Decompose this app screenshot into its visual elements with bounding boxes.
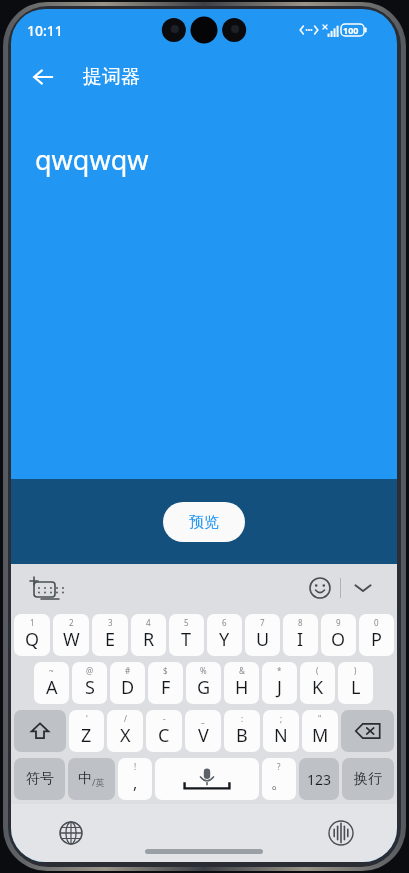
staticText: $	[163, 665, 168, 676]
staticText: C	[158, 723, 170, 748]
button[interactable]: Voice input	[321, 813, 361, 853]
staticText: 提词器	[83, 65, 140, 89]
staticText: L	[351, 675, 361, 700]
button[interactable]: @	[72, 662, 107, 704]
button[interactable]: 3	[92, 614, 128, 656]
button[interactable]: _	[185, 710, 221, 752]
button[interactable]: 预览	[163, 502, 245, 542]
button[interactable]: (	[300, 662, 335, 704]
button[interactable]: $	[148, 662, 183, 704]
button[interactable]: #	[110, 662, 145, 704]
button[interactable]: Keyboard tools	[23, 568, 63, 608]
button[interactable]: 中	[68, 758, 115, 800]
staticText: 中	[78, 770, 92, 788]
staticText: R	[143, 627, 155, 652]
staticText: 0	[374, 617, 379, 628]
button[interactable]: 6	[207, 614, 242, 656]
staticText: ~	[49, 665, 54, 676]
button[interactable]: &	[224, 662, 259, 704]
staticText: 7	[260, 617, 265, 628]
staticText: J	[277, 675, 282, 700]
button[interactable]: Space	[155, 758, 259, 800]
button[interactable]: %	[186, 662, 221, 704]
staticText: 。	[271, 773, 287, 793]
button[interactable]: 符号	[14, 758, 65, 800]
button[interactable]: Change language	[51, 813, 91, 853]
staticText: qwqwqw	[35, 141, 149, 178]
button[interactable]: /	[107, 710, 143, 752]
button[interactable]: 1	[14, 614, 50, 656]
button[interactable]: 换行	[342, 758, 394, 800]
staticText: 2	[69, 617, 74, 628]
staticText: )	[354, 665, 357, 676]
button[interactable]: Shift	[14, 710, 66, 752]
staticText: D	[121, 675, 135, 700]
staticText: 8	[298, 617, 303, 628]
staticText: 5	[184, 617, 189, 628]
button[interactable]: Emoji	[300, 568, 340, 608]
button[interactable]: -	[146, 710, 182, 752]
button[interactable]: ~	[34, 662, 69, 704]
staticText: Y	[219, 627, 230, 652]
staticText: 100	[343, 24, 359, 36]
staticText: %	[200, 665, 207, 676]
staticText: T	[181, 627, 192, 652]
button[interactable]: 0	[359, 614, 394, 656]
staticText: ;	[280, 713, 283, 724]
button[interactable]: :	[224, 710, 260, 752]
staticText: Z	[81, 723, 92, 748]
button[interactable]: 123	[299, 758, 339, 800]
staticText: F	[161, 675, 171, 700]
staticText: /英	[92, 776, 105, 788]
staticText: 123	[307, 770, 332, 789]
button[interactable]: ?	[262, 758, 296, 800]
button[interactable]: 2	[53, 614, 89, 656]
staticText: 1	[30, 617, 35, 628]
staticText: @	[86, 665, 94, 676]
button[interactable]: *	[262, 662, 297, 704]
button[interactable]: '	[69, 710, 104, 752]
staticText: 符号	[26, 770, 54, 788]
staticText: 9	[336, 617, 341, 628]
staticText: B	[236, 723, 248, 748]
button[interactable]: )	[338, 662, 373, 704]
staticText: #	[125, 665, 131, 676]
staticText: I	[297, 627, 304, 652]
staticText: H	[235, 675, 249, 700]
staticText: 3	[108, 617, 113, 628]
staticText: !	[134, 761, 137, 772]
staticText: 10:11	[27, 21, 63, 40]
button[interactable]: Back	[21, 55, 65, 99]
staticText: (	[316, 665, 319, 676]
staticText: _	[201, 713, 205, 724]
button[interactable]: 8	[283, 614, 318, 656]
button[interactable]: Hide keyboard	[341, 566, 385, 610]
button[interactable]: Backspace	[341, 710, 394, 752]
button[interactable]: 4	[131, 614, 166, 656]
staticText: X	[120, 723, 131, 748]
button[interactable]: 7	[245, 614, 280, 656]
button[interactable]: "	[302, 710, 338, 752]
staticText: P	[371, 627, 382, 652]
button[interactable]: !	[118, 758, 152, 800]
staticText: W	[63, 627, 80, 652]
staticText: ,	[133, 772, 138, 794]
staticText: '	[86, 713, 88, 724]
staticText: 换行	[354, 770, 382, 788]
staticText: -	[163, 713, 166, 724]
button[interactable]: 5	[169, 614, 204, 656]
staticText: Q	[25, 627, 40, 652]
staticText: K	[312, 675, 324, 700]
staticText: N	[274, 723, 288, 748]
staticText: O	[331, 627, 346, 652]
button[interactable]: 9	[321, 614, 356, 656]
staticText: *	[277, 665, 282, 676]
staticText: E	[105, 627, 116, 652]
staticText: &	[239, 665, 245, 676]
staticText: V	[198, 723, 209, 748]
button[interactable]: ;	[263, 710, 299, 752]
staticText: 6	[222, 617, 227, 628]
staticText: 预览	[189, 513, 219, 532]
staticText: /	[124, 713, 127, 724]
staticText: S	[85, 675, 95, 700]
